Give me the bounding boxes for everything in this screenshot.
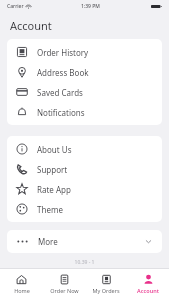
other: Order History (16, 46, 28, 58)
staticText: Carrier (7, 3, 24, 10)
staticText: About Us (37, 144, 72, 155)
other: Theme (16, 203, 28, 215)
staticText: 1:39 PM (81, 3, 100, 10)
staticText: Account (10, 18, 52, 33)
staticText: Order Now (50, 287, 79, 294)
button[interactable]: Support (7, 159, 162, 179)
button[interactable]: Rate App (7, 179, 162, 199)
other: Support (16, 163, 28, 175)
staticText: Notifications (37, 107, 85, 118)
staticText: Address Book (37, 67, 89, 78)
staticText: Home (14, 287, 30, 294)
button[interactable]: Notifications (7, 102, 162, 122)
other: Notifications (16, 106, 28, 118)
button[interactable]: Theme (7, 199, 162, 219)
staticText: My Orders (92, 287, 120, 294)
button[interactable]: Order Now (43, 269, 85, 300)
button[interactable]: About Us (7, 139, 162, 159)
staticText: Rate App (37, 184, 71, 195)
staticText: Account (137, 287, 159, 294)
button[interactable]: Home (0, 269, 43, 300)
button[interactable]: Order History (7, 42, 162, 62)
staticText: 10.39 - 1 (0, 259, 169, 266)
other: Rate App (16, 183, 28, 195)
staticText: Support (37, 164, 68, 175)
staticText: Theme (37, 204, 63, 215)
button[interactable]: Address Book (7, 62, 162, 82)
button[interactable]: Saved Cards (7, 82, 162, 102)
staticText: Order History (37, 47, 89, 58)
staticText: More (38, 236, 58, 247)
button[interactable]: My Orders (85, 269, 127, 300)
other: Saved Cards (16, 86, 28, 98)
staticText: Saved Cards (37, 87, 83, 98)
other: Address Book (16, 66, 28, 78)
other: About Us (16, 143, 28, 155)
button[interactable]: Account (127, 269, 169, 300)
button[interactable]: More (7, 230, 162, 253)
